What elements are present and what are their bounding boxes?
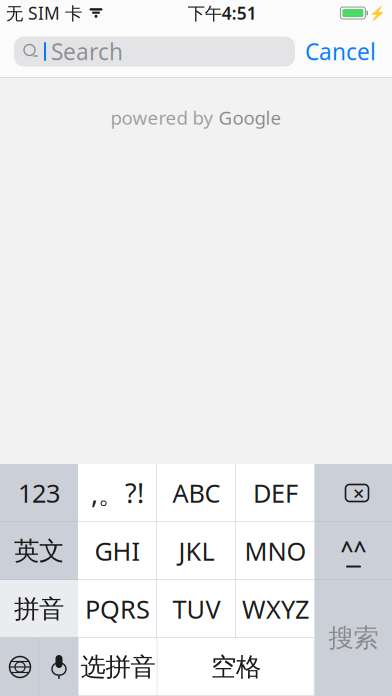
button[interactable]: 拼音 [0,580,78,638]
staticText: Google [218,105,281,130]
staticText: 英文 [14,535,64,566]
staticText: ABC [172,476,220,510]
staticText: ,。?! [91,475,144,511]
staticText: Cancel [305,36,376,66]
button[interactable]: Delete [315,464,392,522]
button[interactable]: 英文 [0,522,78,580]
staticText: 空格 [211,651,261,682]
staticText: ^^ [340,534,366,564]
button[interactable]: TUV [157,580,236,638]
button[interactable]: ABC [157,464,236,522]
staticText: PQRS [85,592,150,626]
button[interactable]: ,。?! [78,464,157,522]
button[interactable]: Cancel [303,36,378,66]
staticText: GHI [94,534,140,568]
staticText: 选拼音 [80,651,155,682]
staticText: 无 SIM 卡 [6,1,82,24]
button[interactable]: PQRS [78,580,157,638]
button[interactable]: JKL [157,522,236,580]
button[interactable]: Dictation [39,638,78,696]
button[interactable]: Next keyboard [0,638,39,696]
button[interactable]: MNO [236,522,315,580]
staticText: powered by [110,105,218,130]
button[interactable]: 搜索 [315,580,392,696]
staticText: MNO [244,534,306,568]
staticText: WXYZ [242,592,309,626]
staticText: DEF [253,476,298,510]
staticText: 下午4:51 [188,1,257,24]
staticText: 123 [18,476,60,510]
button[interactable]: 空格 [157,638,314,696]
button[interactable]: DEF [236,464,315,522]
staticText: JKL [178,534,214,568]
staticText: ⚡ [369,5,386,21]
button[interactable]: Search [14,36,295,66]
staticText: 搜索 [328,622,378,653]
staticText: TUV [172,592,220,626]
button[interactable]: WXYZ [236,580,315,638]
button[interactable]: GHI [78,522,157,580]
button[interactable]: 选拼音 [78,638,157,696]
staticText: Search [51,36,123,66]
button[interactable]: Emoji [315,522,392,580]
staticText: × [353,480,364,506]
staticText: 拼音 [14,593,64,624]
button[interactable]: 123 [0,464,78,522]
